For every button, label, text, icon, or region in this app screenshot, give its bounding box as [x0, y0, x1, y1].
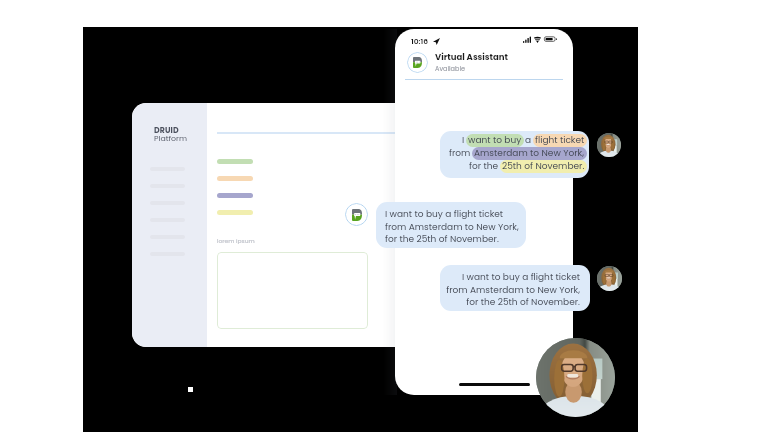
- staticText: Platform: [154, 133, 188, 144]
- staticText: Available: [435, 64, 466, 73]
- staticText: 25th of November.: [502, 160, 585, 173]
- button[interactable]: I want to buy a flight ticket from Amste…: [440, 265, 590, 311]
- button[interactable]: User avatar: [597, 266, 622, 291]
- staticText: I want to buy a flight ticket from Amste…: [385, 208, 519, 245]
- button[interactable]: User avatar: [597, 133, 621, 157]
- staticText: for the: [469, 160, 499, 173]
- staticText: 10:16: [411, 36, 429, 46]
- button[interactable]: I: [440, 131, 589, 178]
- staticText: DRUID: [154, 125, 179, 136]
- staticText: flight ticket: [535, 134, 585, 147]
- staticText: lorem ipsum: [217, 237, 255, 245]
- button[interactable]: Profile photo: [536, 338, 615, 417]
- staticText: I: [462, 134, 465, 147]
- staticText: want to buy: [468, 134, 522, 147]
- staticText: Virtual Assistant: [435, 51, 509, 63]
- button[interactable]: Virtual Assistant: [407, 51, 509, 73]
- button[interactable]: Virtual Assistant: [345, 203, 368, 226]
- staticText: from: [449, 147, 471, 160]
- staticText: Amsterdam to New York,: [474, 147, 585, 160]
- staticText: I want to buy a flight ticket from Amste…: [446, 271, 580, 308]
- button[interactable]: I want to buy a flight ticket from Amste…: [376, 202, 526, 248]
- button[interactable]: DRUID: [154, 125, 188, 145]
- staticText: a: [525, 134, 532, 147]
- button[interactable]: Virtual Assistant: [407, 52, 428, 73]
